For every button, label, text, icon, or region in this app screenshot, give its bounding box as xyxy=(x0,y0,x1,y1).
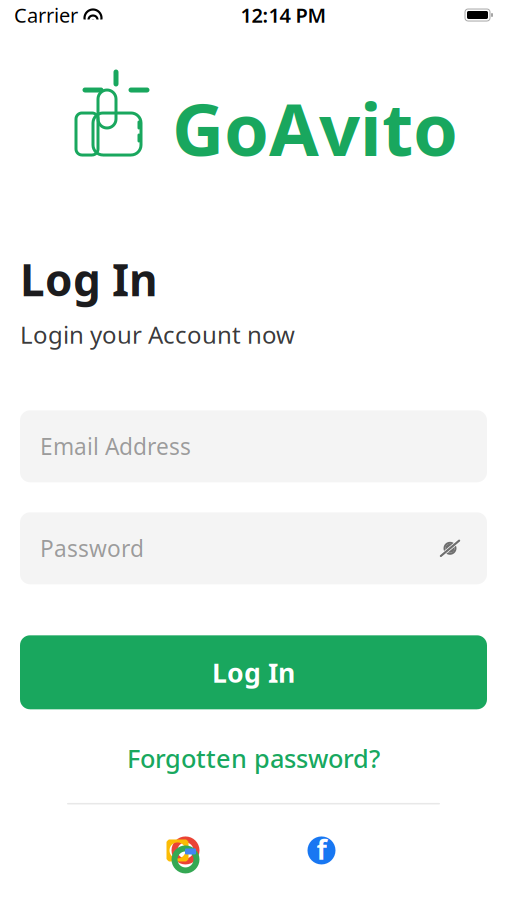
staticText: Log In xyxy=(212,655,295,690)
staticText: Carrier xyxy=(14,2,78,28)
button[interactable]: Sign in with Facebook xyxy=(294,826,348,874)
staticText: f xyxy=(316,832,326,867)
button[interactable]: Sign in with Google xyxy=(158,826,212,874)
button[interactable]: Show password xyxy=(433,531,467,565)
button[interactable]: Log In xyxy=(20,635,487,709)
staticText: Log In xyxy=(20,250,158,308)
staticText: Email Address xyxy=(40,431,191,461)
staticText: Login your Account now xyxy=(20,318,295,350)
button[interactable]: Forgotten password? xyxy=(115,735,392,781)
staticText: GoAvito xyxy=(172,80,458,176)
button[interactable]: Email Address xyxy=(20,410,487,482)
button[interactable]: Password xyxy=(20,512,487,584)
staticText: 12:14 PM xyxy=(240,2,326,28)
staticText: Password xyxy=(40,533,144,563)
staticText: Forgotten password? xyxy=(127,741,380,775)
